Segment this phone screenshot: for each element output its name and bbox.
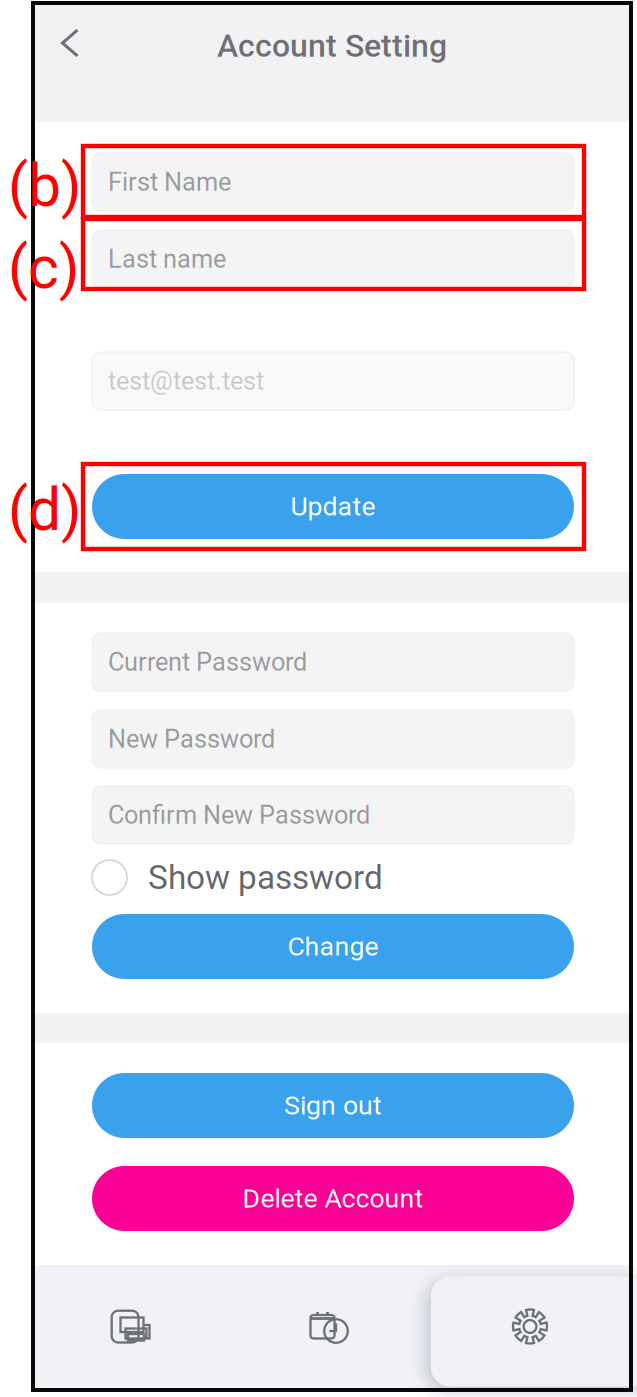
button[interactable]: Update xyxy=(92,474,574,539)
button[interactable]: Sign out xyxy=(92,1073,574,1138)
staticText: Update xyxy=(290,491,375,522)
button[interactable]: Schedule xyxy=(232,1265,431,1390)
button[interactable]: Change xyxy=(92,914,574,979)
staticText: Delete Account xyxy=(242,1183,423,1214)
staticText: Current Password xyxy=(108,647,307,677)
staticText: (c) xyxy=(8,234,79,302)
staticText: (b) xyxy=(8,152,81,220)
staticText: (d) xyxy=(8,476,81,544)
staticText: test@test.test xyxy=(108,366,264,396)
button[interactable]: Back xyxy=(44,8,96,78)
staticText: Account Setting xyxy=(217,27,447,64)
button[interactable]: Show password xyxy=(92,860,574,895)
button[interactable]: Delete Account xyxy=(92,1166,574,1231)
staticText: First Name xyxy=(108,167,231,197)
staticText: Confirm New Password xyxy=(108,800,370,830)
staticText: Show password xyxy=(148,858,383,897)
staticText: Sign out xyxy=(284,1090,382,1121)
staticText: Last name xyxy=(108,244,226,274)
button[interactable]: Settings xyxy=(431,1265,631,1390)
button[interactable]: Documents xyxy=(33,1265,232,1390)
staticText: New Password xyxy=(108,724,275,754)
staticText: Change xyxy=(287,931,378,962)
